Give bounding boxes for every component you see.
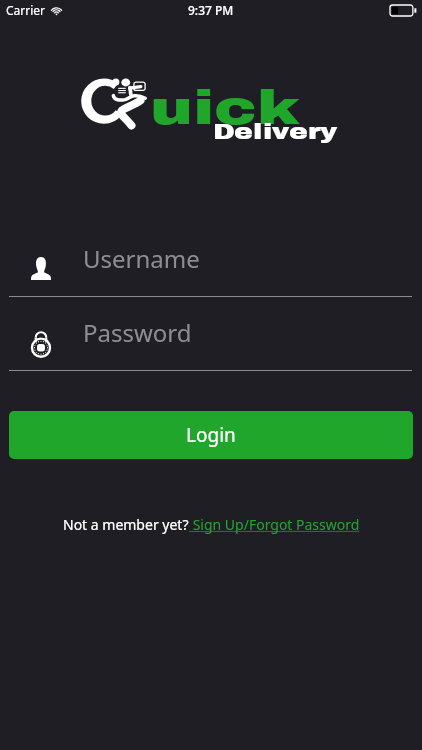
staticText: 9:37 PM xyxy=(188,2,234,18)
button[interactable]: Password xyxy=(0,316,422,371)
other: Username xyxy=(31,257,51,280)
staticText: Username xyxy=(83,242,200,275)
other: Password xyxy=(31,328,51,354)
staticText: Not a member yet? xyxy=(63,515,189,534)
staticText: Login xyxy=(186,422,236,448)
button[interactable]: Sign Up/Forgot Password xyxy=(189,515,360,534)
staticText: Password xyxy=(83,316,192,349)
staticText: Carrier xyxy=(6,2,46,18)
button[interactable]: Username xyxy=(0,242,422,297)
staticText: Sign Up/Forgot Password xyxy=(189,515,360,534)
button[interactable]: Login xyxy=(9,411,413,459)
